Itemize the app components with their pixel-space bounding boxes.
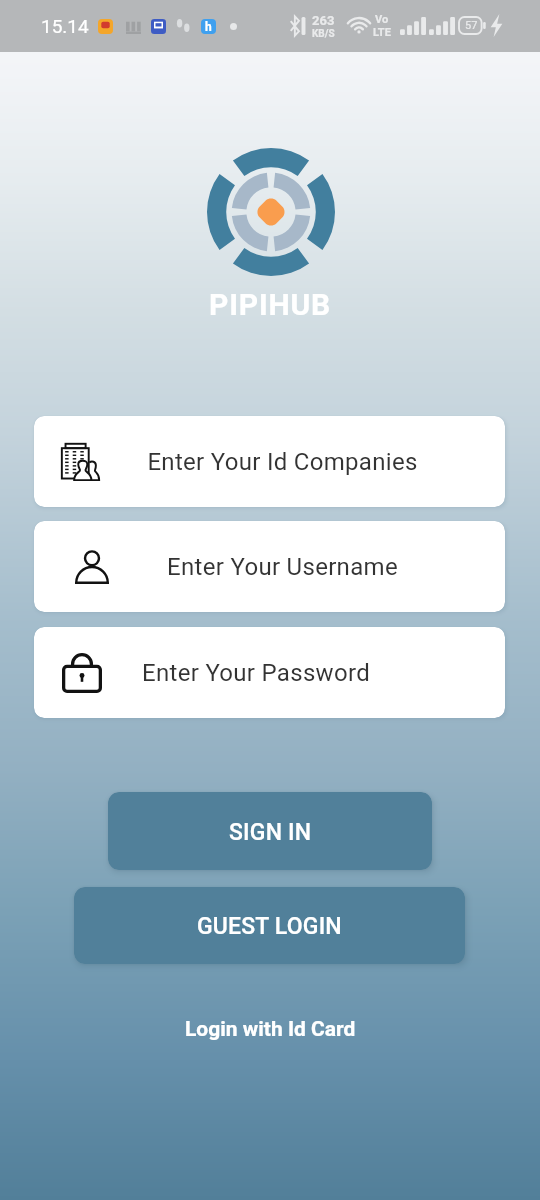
- staticText: LTE: [373, 26, 391, 39]
- button[interactable]: GUEST LOGIN: [74, 887, 465, 964]
- staticText: Enter Your Password: [142, 659, 370, 687]
- staticText: 57: [465, 19, 478, 32]
- staticText: 15.14: [41, 15, 89, 37]
- button[interactable]: SIGN IN: [108, 792, 432, 870]
- staticText: Login with Id Card: [185, 1017, 356, 1042]
- button[interactable]: Login with Id Card: [173, 1008, 368, 1051]
- staticText: KB/S: [312, 28, 335, 40]
- staticText: 263: [312, 13, 335, 28]
- button[interactable]: Enter Your Username: [34, 521, 505, 612]
- staticText: PIPIHUB: [209, 287, 331, 322]
- staticText: Enter Your Id Companies: [147, 448, 418, 476]
- staticText: SIGN IN: [229, 819, 312, 846]
- staticText: h: [205, 20, 212, 34]
- staticText: Enter Your Username: [167, 553, 398, 581]
- button[interactable]: Enter Your Password: [34, 627, 505, 718]
- staticText: GUEST LOGIN: [197, 913, 342, 940]
- button[interactable]: Enter Your Id Companies: [34, 416, 505, 507]
- staticText: Vo: [375, 13, 389, 26]
